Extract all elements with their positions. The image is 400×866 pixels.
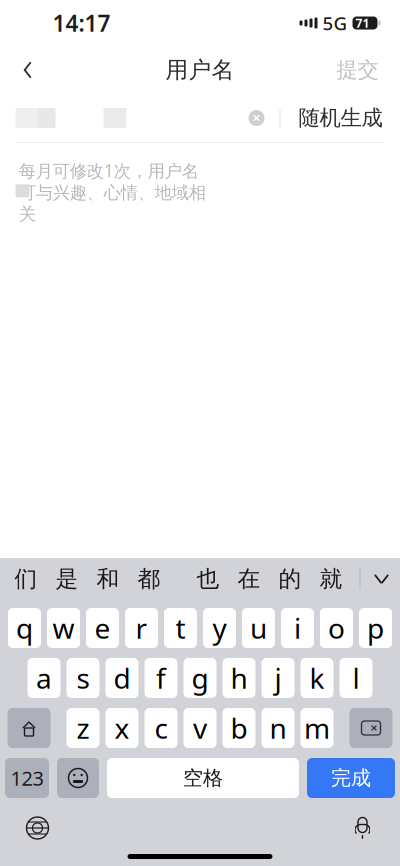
button[interactable]: s [66, 658, 99, 698]
staticText: a [36, 659, 52, 697]
button[interactable]: 随机生成 [286, 98, 394, 138]
staticText: l [352, 659, 359, 697]
button[interactable]: v [183, 708, 216, 748]
staticText: d [113, 659, 130, 697]
staticText: b [230, 709, 247, 747]
button[interactable]: 也 [187, 559, 228, 599]
staticText: 都 [137, 565, 160, 593]
button[interactable]: z [66, 708, 99, 748]
staticText: e [94, 609, 110, 647]
button[interactable]: j [261, 658, 294, 698]
staticText: 随机生成 [298, 105, 382, 131]
button[interactable]: k [300, 658, 333, 698]
staticText: x [114, 709, 129, 747]
staticText: u [250, 609, 267, 647]
button[interactable]: u [242, 608, 275, 648]
button[interactable]: 123 [5, 758, 49, 798]
button[interactable]: p [359, 608, 392, 648]
staticText: 用户名 [165, 56, 234, 84]
staticText: o [328, 609, 345, 647]
button[interactable]: c [144, 708, 177, 748]
staticText: f [156, 659, 166, 697]
staticText: j [274, 659, 281, 697]
staticText: w [52, 609, 74, 647]
button[interactable]: Shift [7, 708, 50, 748]
staticText: 就 [319, 565, 342, 593]
button[interactable]: f [144, 658, 177, 698]
staticText: 也 [196, 565, 219, 593]
button[interactable]: o [320, 608, 353, 648]
staticText: 和 [96, 565, 119, 593]
button[interactable]: Delete [349, 708, 392, 748]
staticText: k [309, 659, 324, 697]
staticText: 每月可修改1次，用户名可与兴趣、心情、地域相关 [19, 159, 206, 225]
button[interactable]: 都 [128, 559, 169, 599]
button[interactable]: 们 [5, 559, 46, 599]
button[interactable]: 在 [228, 559, 269, 599]
button[interactable]: Switch keyboard [15, 810, 59, 846]
button[interactable]: q [8, 608, 41, 648]
staticText: m [304, 709, 330, 747]
staticText: g [191, 659, 208, 697]
button[interactable]: y [203, 608, 236, 648]
button[interactable]: Back [5, 50, 49, 90]
staticText: 71 [355, 15, 369, 31]
staticText: z [76, 709, 89, 747]
button[interactable]: Dictation [340, 810, 384, 846]
button[interactable]: 和 [87, 559, 128, 599]
button[interactable]: 完成 [307, 758, 395, 798]
button[interactable]: 就 [310, 559, 351, 599]
staticText: p [367, 609, 384, 647]
staticText: h [230, 659, 247, 697]
button[interactable]: n [261, 708, 294, 748]
staticText: v [193, 709, 207, 747]
staticText: 在 [237, 565, 260, 593]
staticText: 的 [278, 565, 301, 593]
button[interactable]: g [183, 658, 216, 698]
button[interactable]: a [27, 658, 60, 698]
staticText: 完成 [331, 766, 371, 790]
staticText: 空格 [183, 766, 223, 790]
staticText: 们 [14, 565, 37, 593]
button[interactable]: 的 [269, 559, 310, 599]
button[interactable]: Hide candidates [360, 559, 400, 599]
staticText: 5G [322, 11, 347, 35]
staticText: q [16, 609, 33, 647]
button[interactable]: 是 [46, 559, 87, 599]
staticText: 提交 [336, 57, 378, 83]
staticText: y [212, 609, 226, 647]
button[interactable]: t [164, 608, 197, 648]
staticText: t [175, 609, 185, 647]
button[interactable]: w [47, 608, 80, 648]
staticText: 是 [55, 565, 78, 593]
button[interactable]: x [105, 708, 138, 748]
staticText: n [269, 709, 286, 747]
button[interactable]: m [300, 708, 333, 748]
button[interactable]: e [86, 608, 119, 648]
button[interactable]: i [281, 608, 314, 648]
button[interactable]: d [105, 658, 138, 698]
staticText: c [154, 709, 167, 747]
staticText: 14:17 [52, 8, 110, 38]
staticText: r [135, 609, 147, 647]
staticText: 123 [10, 765, 43, 791]
button[interactable]: Clear [239, 101, 273, 135]
button[interactable]: b [222, 708, 255, 748]
button[interactable]: h [222, 658, 255, 698]
button[interactable]: Emoji [57, 758, 99, 798]
button[interactable]: r [125, 608, 158, 648]
button[interactable]: l [339, 658, 372, 698]
button[interactable]: 提交 [320, 50, 394, 90]
button[interactable]: 空格 [107, 758, 299, 798]
staticText: i [294, 609, 301, 647]
staticText: s [76, 659, 89, 697]
